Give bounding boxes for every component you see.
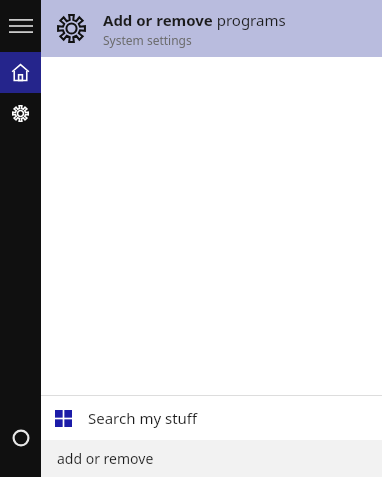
button[interactable]: add or remove	[41, 440, 382, 477]
button[interactable]: Home	[0, 52, 41, 93]
staticText: System settings	[103, 32, 192, 48]
button[interactable]: Menu	[0, 0, 41, 52]
button[interactable]: Add or remove programs	[41, 0, 382, 57]
staticText: Add or remove programs	[103, 10, 286, 30]
button[interactable]: Cortana	[0, 407, 41, 469]
staticText: add or remove	[57, 449, 154, 468]
button[interactable]: Search my stuff	[41, 396, 382, 440]
button[interactable]: Settings	[0, 93, 41, 134]
staticText: Search my stuff	[88, 408, 198, 428]
